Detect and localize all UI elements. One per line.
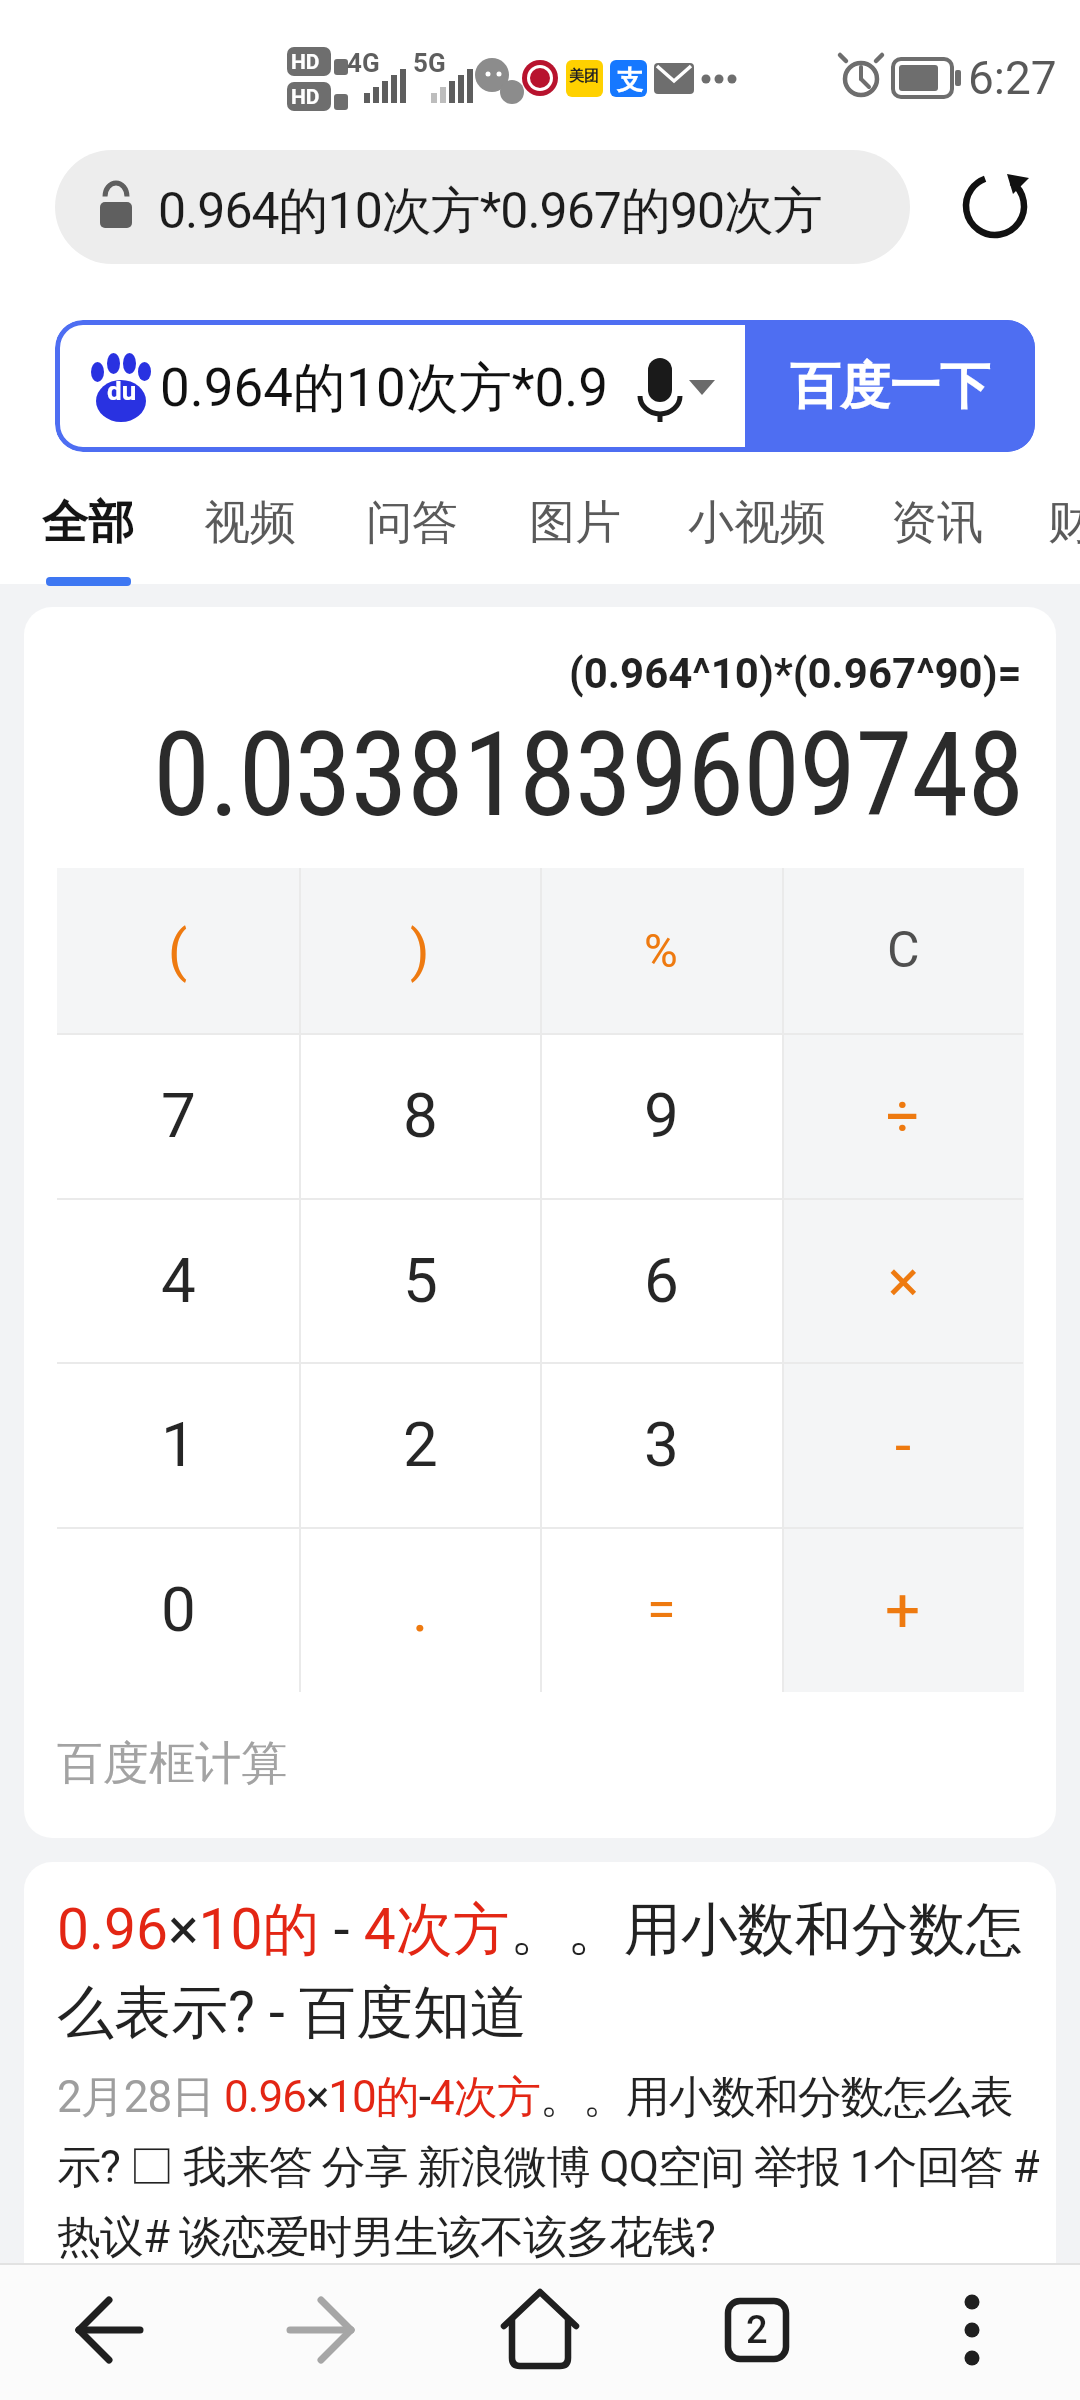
button[interactable] xyxy=(955,166,1035,246)
staticText: 3 xyxy=(644,1408,679,1481)
button[interactable]: 0.964的10次方*0.967的90次方 xyxy=(55,150,910,264)
staticText: ) xyxy=(410,918,430,984)
staticText: C xyxy=(887,921,920,980)
staticText: HD xyxy=(291,50,320,75)
staticText: 8 xyxy=(403,1079,438,1152)
staticText: 热议# 谈恋爱时男生该不该多花钱? xyxy=(57,2210,715,2265)
staticText: 6 xyxy=(644,1244,679,1317)
staticText: . xyxy=(412,1573,429,1646)
button[interactable]: - xyxy=(782,1362,1024,1527)
button[interactable]: 2 xyxy=(299,1362,541,1527)
button[interactable]: 0.96×10的 - 4次方。。用小数和分数怎 xyxy=(24,1862,1056,2400)
button[interactable]: 2 xyxy=(707,2280,807,2380)
staticText: 示? □ 我来答 分享 新浪微博 QQ空间 举报 1个回答 # xyxy=(57,2140,1039,2195)
button[interactable]: 0 xyxy=(57,1527,299,1692)
button[interactable]: 8 xyxy=(299,1033,541,1198)
button[interactable]: 7 xyxy=(57,1033,299,1198)
staticText: 9 xyxy=(644,1079,679,1152)
button[interactable] xyxy=(55,320,745,452)
staticText: (0.964^10)*(0.967^90)= xyxy=(569,649,1022,698)
staticText: HD xyxy=(291,85,320,110)
staticText: 1 xyxy=(161,1408,196,1481)
button[interactable] xyxy=(922,2280,1022,2380)
button[interactable] xyxy=(57,2280,157,2380)
staticText: 美团 xyxy=(569,67,599,86)
staticText: ÷ xyxy=(886,1082,920,1150)
staticText: 0.964的10次方*0.967的90次方 xyxy=(158,180,823,243)
button[interactable]: 5 xyxy=(299,1198,541,1363)
button[interactable]: % xyxy=(540,868,782,1033)
button[interactable]: = xyxy=(540,1527,782,1692)
button[interactable]: 6 xyxy=(540,1198,782,1363)
button[interactable]: + xyxy=(782,1527,1024,1692)
staticText: 0.03381839609748 xyxy=(153,707,1024,843)
staticText: 支 xyxy=(617,64,643,97)
button[interactable] xyxy=(273,2280,373,2380)
staticText: 么表示? - 百度知道 xyxy=(57,1977,527,2049)
staticText: 5G xyxy=(413,48,446,78)
staticText: 0.964的10次方*0.9 xyxy=(160,355,609,422)
button[interactable]: 3 xyxy=(540,1362,782,1527)
button[interactable]: ( xyxy=(57,868,299,1033)
staticText: 4 xyxy=(161,1244,196,1317)
button[interactable]: 9 xyxy=(540,1033,782,1198)
staticText: × xyxy=(888,1247,919,1315)
button[interactable]: ÷ xyxy=(782,1033,1024,1198)
staticText: 6:27 xyxy=(968,51,1057,105)
staticText: 2 xyxy=(403,1408,438,1481)
staticText: 2月28日 0.96×10的-4次方。。用小数和分数怎么表 xyxy=(57,2070,1013,2125)
button[interactable]: ) xyxy=(299,868,541,1033)
button[interactable]: 4 xyxy=(57,1198,299,1363)
button[interactable] xyxy=(490,2280,590,2380)
staticText: = xyxy=(647,1579,676,1640)
staticText: 5 xyxy=(403,1244,438,1317)
staticText: 4G xyxy=(347,48,380,78)
button[interactable]: C xyxy=(782,868,1024,1033)
staticText: + xyxy=(885,1573,921,1646)
staticText: % xyxy=(644,924,678,978)
staticText: 2 xyxy=(746,2308,768,2353)
staticText: 0 xyxy=(161,1573,196,1646)
button[interactable]: × xyxy=(782,1198,1024,1363)
staticText: - xyxy=(895,1411,912,1479)
staticText: ( xyxy=(168,918,188,984)
button[interactable]: 1 xyxy=(57,1362,299,1527)
staticText: 7 xyxy=(161,1079,196,1152)
staticText: 百度一下 xyxy=(790,355,990,418)
button[interactable] xyxy=(737,364,779,408)
button[interactable]: 百度一下 xyxy=(745,320,1035,452)
button[interactable]: . xyxy=(299,1527,541,1692)
staticText: du xyxy=(107,376,137,406)
staticText: 0.96×10的 - 4次方。。用小数和分数怎 xyxy=(57,1894,1023,1966)
button[interactable] xyxy=(683,346,739,430)
